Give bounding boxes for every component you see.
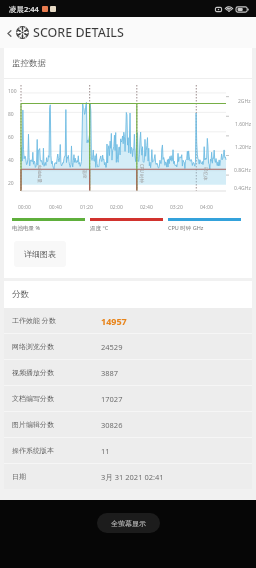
staticText: 14957 <box>101 315 127 327</box>
staticText: 操作系统版本 <box>12 446 54 455</box>
staticText: 工作效能 分数 <box>12 316 56 326</box>
staticText: 00:00 <box>18 204 31 211</box>
staticText: CPU 时钟 <box>139 164 145 184</box>
staticText: 电池电量 <box>36 165 42 183</box>
staticText: 17027 <box>101 394 123 404</box>
staticText: 全萤幕显示 <box>111 519 146 528</box>
staticText: 监控数据 <box>12 58 46 69</box>
button[interactable]: 图片编辑分数 <box>4 412 252 437</box>
button[interactable]: 网络浏览分数 <box>4 334 252 359</box>
staticText: 0.8GHz <box>234 167 251 174</box>
staticText: 04:00 <box>200 204 213 211</box>
button[interactable]: 全萤幕显示 <box>97 513 160 533</box>
staticText: 0.4GHz <box>234 185 251 192</box>
staticText: 2GHz <box>238 98 251 105</box>
button[interactable]: 操作系统版本 <box>4 438 252 463</box>
staticText: 详细图表 <box>24 249 56 259</box>
staticText: 温度 <box>80 169 86 178</box>
staticText: 1.60Hz <box>235 121 251 128</box>
staticText: 3月 31 2021 02:41 <box>101 472 164 482</box>
staticText: 24529 <box>101 342 123 352</box>
button[interactable]: 详细图表 <box>14 241 66 267</box>
staticText: 温度 °C <box>90 224 109 232</box>
staticText: 80 <box>8 111 14 118</box>
staticText: 电池电量 % <box>12 224 41 232</box>
button[interactable]: 文档编写分数 <box>4 386 252 411</box>
staticText: 网络浏览分数 <box>12 342 54 351</box>
staticText: 02:40 <box>140 204 153 211</box>
staticText: 日期 <box>12 472 26 481</box>
staticText: 文档编写分数 <box>12 394 54 403</box>
button[interactable]: 日期 <box>4 464 252 489</box>
staticText: 分数 <box>12 289 29 300</box>
staticText: 视频播放分数 <box>12 368 54 377</box>
staticText: 30826 <box>101 420 123 430</box>
staticText: 40 <box>8 157 14 164</box>
staticText: 20 <box>8 180 14 187</box>
staticText: 凌晨2:44 <box>9 4 39 14</box>
staticText: 1.20Hz <box>235 144 251 151</box>
staticText: 记忆体 <box>202 167 208 181</box>
staticText: 01:20 <box>80 204 93 211</box>
staticText: 3887 <box>101 368 119 378</box>
staticText: 03:20 <box>170 204 183 211</box>
button[interactable]: 视频播放分数 <box>4 360 252 385</box>
staticText: 图片编辑分数 <box>12 420 54 429</box>
staticText: 11 <box>101 446 110 456</box>
button[interactable]: 工作效能 分数 <box>4 308 252 333</box>
staticText: SCORE DETAILS <box>33 24 124 41</box>
staticText: 00:40 <box>49 204 62 211</box>
staticText: CPU 时钟 GHz <box>168 224 204 232</box>
button[interactable]: Back <box>2 26 16 40</box>
staticText: 60 <box>8 134 14 141</box>
staticText: 100 <box>8 88 17 95</box>
staticText: 02:00 <box>110 204 123 211</box>
